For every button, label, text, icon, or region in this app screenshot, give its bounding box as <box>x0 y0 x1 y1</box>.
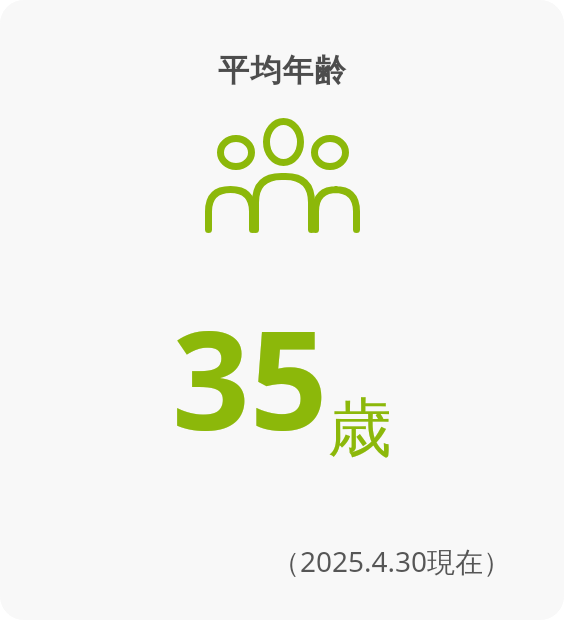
staticText: 35 <box>172 285 328 470</box>
staticText: （2025.4.30現在） <box>272 542 512 580</box>
button[interactable]: 平均年齢 <box>0 0 564 620</box>
staticText: 平均年齢 <box>218 51 347 90</box>
other: People <box>202 118 362 233</box>
staticText: 歳 <box>328 388 392 469</box>
